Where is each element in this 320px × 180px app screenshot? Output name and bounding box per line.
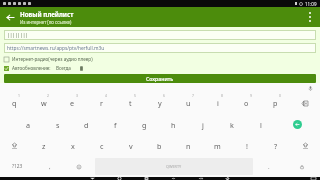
staticText: ? [274,141,278,151]
button[interactable]: 3 [58,92,87,114]
staticText: g [142,120,147,130]
button[interactable]: Верхний регистр [290,135,320,156]
staticText: Сохранить [146,75,174,82]
staticText: 2 [47,93,49,98]
staticText: p [273,98,278,108]
button[interactable]: g [130,114,159,135]
staticText: 0 [279,93,281,98]
staticText: Интернет-радио(через аудио плеер) [12,56,93,62]
staticText: Автообновление: [12,65,51,71]
staticText: d [84,120,89,130]
staticText: z [42,141,46,151]
staticText: n [186,141,191,151]
staticText: a [26,120,31,130]
staticText: f [114,120,117,130]
button[interactable]: Ещё [300,7,320,27]
staticText: 11:09 [305,1,317,7]
button[interactable]: Ввод [275,114,320,135]
staticText: u [186,98,191,108]
button[interactable]: c [87,135,116,156]
button[interactable]: 0 [261,92,290,114]
staticText: 4 [105,93,107,98]
button[interactable]: j [188,114,217,135]
button[interactable]: b [145,135,174,156]
staticText: j [202,120,204,130]
staticText: . [268,163,270,171]
button[interactable]: Прибавить звук [195,177,206,180]
button[interactable]: Главный экран [114,177,125,180]
staticText: i [217,98,219,108]
button[interactable]: k [217,114,246,135]
button[interactable]: 1 [0,92,29,114]
button[interactable]: , [35,156,64,177]
button[interactable]: ? [261,135,290,156]
button[interactable]: Голосовой ввод [306,84,314,92]
staticText: 6 [163,93,165,98]
button[interactable]: 2 [29,92,58,114]
staticText: x [71,141,75,151]
button[interactable]: Эмодзи [64,156,94,177]
button[interactable]: 4 [87,92,116,114]
button[interactable]: n [174,135,203,156]
button[interactable]: 6 [145,92,174,114]
staticText: QWERTY [166,164,182,169]
button[interactable]: https://smartnews.ru/apps/ptv/herfull.m3… [4,43,316,53]
button[interactable]: 8 [203,92,232,114]
button[interactable]: d [72,114,101,135]
staticText: k [230,120,234,130]
staticText: c [100,141,104,151]
button[interactable]: Удалить [290,92,320,114]
button[interactable]: ! [232,135,261,156]
staticText: https://smartnews.ru/apps/ptv/herfull.m3… [7,45,105,52]
staticText: t [129,98,132,108]
button[interactable]: m [203,135,232,156]
staticText: 1 [18,93,20,98]
staticText: b [157,141,162,151]
button[interactable]: Автообновление: [4,65,51,71]
button[interactable]: 5 [116,92,145,114]
staticText: y [158,98,162,108]
staticText: o [244,98,249,108]
staticText: 8 [221,93,223,98]
button[interactable]: Скрыть клавиатуру [311,177,316,180]
button[interactable]: Верхний регистр [0,135,29,156]
button[interactable]: 7 [174,92,203,114]
button[interactable]: h [159,114,188,135]
button[interactable]: v [116,135,145,156]
staticText: |||||||| [7,32,29,39]
button[interactable]: Назад [0,7,20,27]
staticText: h [171,120,176,130]
button[interactable]: Всегда [56,65,71,71]
staticText: ?123 [12,163,23,170]
button[interactable]: Интернет-радио(через аудио плеер) [4,56,316,62]
staticText: Всегда [56,65,71,71]
staticText: Новый плейлист [20,10,74,18]
staticText: 9 [250,93,252,98]
staticText: q [12,98,17,108]
staticText: m [214,141,221,151]
staticText: 5 [134,93,136,98]
staticText: r [100,98,103,108]
button[interactable]: |||||||| [4,30,316,40]
button[interactable]: x [58,135,87,156]
button[interactable]: Убавить звук [168,177,179,180]
button[interactable]: Сохранить [4,74,316,83]
staticText: 3 [76,93,78,98]
staticText: s [56,120,60,130]
button[interactable]: a [14,114,43,135]
button[interactable]: ?123 [0,156,35,177]
button[interactable]: Питание [222,177,233,180]
button[interactable]: s [43,114,72,135]
button[interactable]: z [29,135,58,156]
button[interactable]: Пробел [94,156,254,177]
button[interactable]: Настройки ввода [284,156,320,177]
button[interactable]: f [101,114,130,135]
staticText: v [129,141,133,151]
button[interactable]: Обзор [141,177,152,180]
button[interactable]: Назад [87,177,98,180]
button[interactable]: Справка [79,66,84,71]
button[interactable]: 9 [232,92,261,114]
button[interactable]: l [246,114,275,135]
staticText: l [260,120,262,130]
